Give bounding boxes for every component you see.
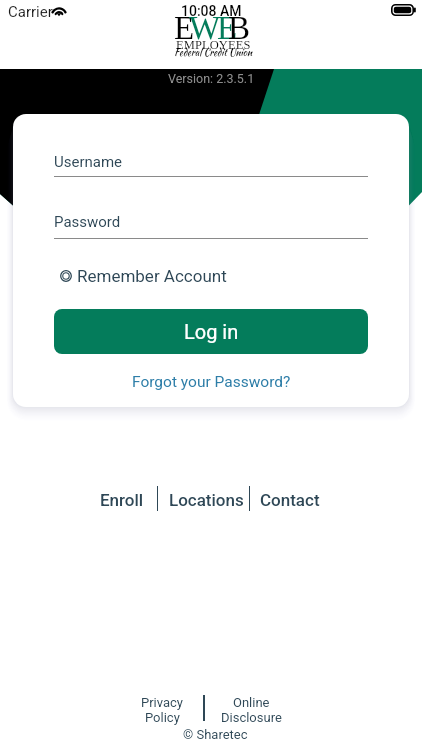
- staticText: Carrier: [8, 3, 53, 21]
- staticText: Log in: [184, 320, 239, 343]
- button[interactable]: Locations: [169, 490, 244, 510]
- staticText: Online: [233, 695, 270, 710]
- button[interactable]: Enroll: [100, 490, 144, 510]
- button[interactable]: Remember Account: [54, 264, 254, 288]
- staticText: Federal Credit Union: [174, 46, 253, 60]
- staticText: E: [217, 10, 238, 47]
- staticText: Privacy: [141, 695, 183, 710]
- button[interactable]: Online: [219, 695, 284, 725]
- staticText: Password: [54, 213, 121, 231]
- staticText: © Sharetec: [183, 727, 248, 742]
- staticText: Version: 2.3.5.1: [168, 71, 255, 86]
- button[interactable]: Log in: [54, 309, 368, 354]
- staticText: E: [174, 10, 195, 47]
- button[interactable]: Privacy: [137, 695, 187, 725]
- staticText: B: [228, 10, 251, 47]
- staticText: Policy: [145, 710, 180, 725]
- staticText: 10:08 AM: [181, 3, 242, 19]
- staticText: W: [189, 10, 221, 47]
- button[interactable]: Contact: [260, 490, 320, 510]
- staticText: Disclosure: [221, 710, 282, 725]
- staticText: EMPLOYEES: [176, 38, 251, 52]
- staticText: Username: [54, 153, 123, 171]
- staticText: Remember Account: [77, 266, 227, 286]
- button[interactable]: Forgot your Password?: [132, 373, 291, 391]
